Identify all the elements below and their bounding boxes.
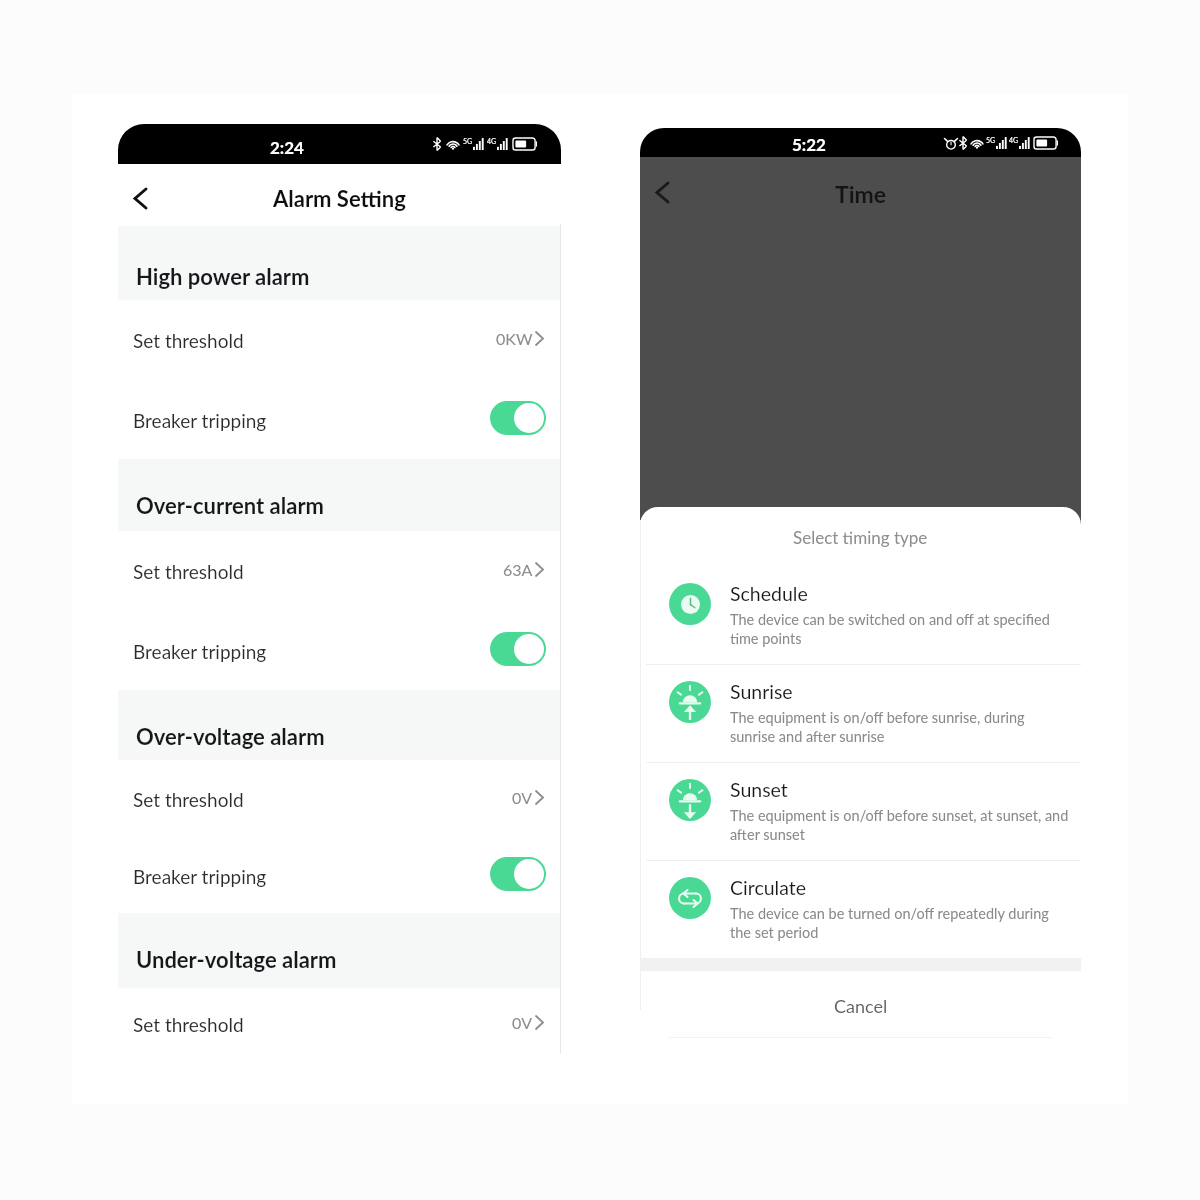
staticText: Breaker tripping	[133, 640, 267, 663]
button[interactable]: Set threshold	[118, 300, 561, 379]
staticText: Set threshold	[133, 1013, 244, 1036]
staticText: Over-voltage alarm	[136, 723, 325, 749]
button[interactable]: Cancel	[640, 971, 1081, 1037]
staticText: 4G	[487, 137, 497, 145]
button[interactable]: Sunrise	[640, 665, 1081, 762]
staticText: Sunrise	[730, 680, 793, 703]
button[interactable]: Set threshold	[118, 988, 561, 1059]
button[interactable]	[490, 632, 546, 666]
staticText: The equipment is on/off before sunrise, …	[730, 709, 1071, 745]
button[interactable]: Set threshold	[118, 760, 561, 837]
staticText: Sunset	[730, 778, 788, 801]
staticText: Schedule	[730, 582, 808, 605]
staticText: Time	[835, 180, 887, 208]
staticText: Set threshold	[133, 560, 244, 583]
button[interactable]: Breaker tripping	[118, 610, 561, 690]
staticText: High power alarm	[136, 263, 310, 289]
staticText: 0KW	[496, 329, 533, 348]
staticText: Select timing type	[793, 527, 928, 547]
staticText: The equipment is on/off before sunset, a…	[730, 807, 1071, 843]
staticText: 5G	[463, 137, 473, 145]
staticText: Cancel	[834, 995, 888, 1017]
staticText: Under-voltage alarm	[136, 946, 337, 972]
staticText: Circulate	[730, 876, 806, 899]
staticText: Alarm Setting	[273, 185, 406, 211]
button[interactable]: Breaker tripping	[118, 837, 561, 913]
staticText: Set threshold	[133, 788, 244, 811]
button[interactable]: Schedule	[640, 567, 1081, 664]
staticText: 4G	[1009, 136, 1019, 144]
button[interactable]	[490, 401, 546, 435]
button[interactable]: Circulate	[640, 861, 1081, 958]
staticText: Breaker tripping	[133, 409, 267, 432]
staticText: 63A	[503, 560, 533, 579]
button[interactable]: Set threshold	[118, 531, 561, 610]
staticText: 0V	[512, 788, 533, 807]
staticText: Over-current alarm	[136, 492, 325, 518]
button[interactable]: Back	[640, 170, 684, 214]
staticText: 0V	[512, 1013, 533, 1032]
staticText: Set threshold	[133, 329, 244, 352]
staticText: 5:22	[792, 134, 826, 154]
button[interactable]	[490, 857, 546, 891]
staticText: 5G	[986, 136, 996, 144]
button[interactable]: Breaker tripping	[118, 379, 561, 459]
button[interactable]: Back	[118, 176, 162, 220]
button[interactable]: Sunset	[640, 763, 1081, 860]
staticText: 2:24	[270, 137, 304, 157]
staticText: Breaker tripping	[133, 865, 267, 888]
staticText: The device can be switched on and off at…	[730, 611, 1071, 647]
staticText: The device can be turned on/off repeated…	[730, 905, 1071, 941]
